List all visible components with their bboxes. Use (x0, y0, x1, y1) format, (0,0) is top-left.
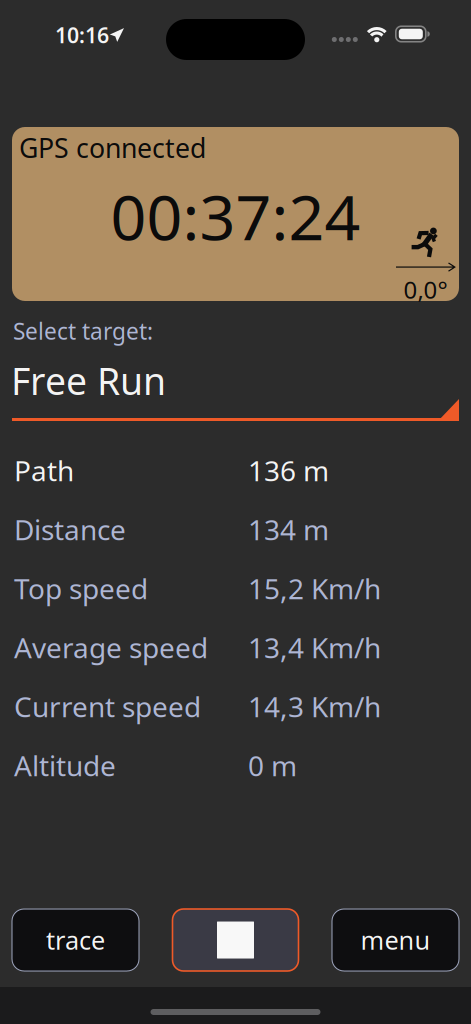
staticText: 136 m (248, 452, 329, 489)
staticText: menu (360, 923, 430, 957)
staticText: Altitude (14, 747, 116, 784)
button[interactable]: Stop (172, 909, 298, 971)
staticText: 00:37:24 (110, 174, 360, 258)
staticText: 0,0° (403, 274, 447, 305)
staticText: 134 m (248, 511, 329, 548)
button[interactable]: Select target: (0, 311, 471, 421)
button[interactable]: trace (12, 909, 139, 971)
staticText: 13,4 Km/h (248, 629, 381, 666)
staticText: Average speed (14, 629, 208, 666)
staticText: 0 m (248, 747, 297, 784)
staticText: Select target: (13, 316, 153, 346)
staticText: GPS connected (19, 130, 206, 165)
staticText: Current speed (14, 688, 201, 725)
staticText: Free Run (11, 356, 166, 405)
staticText: 15,2 Km/h (248, 570, 381, 607)
staticText: Distance (14, 511, 126, 548)
button[interactable]: menu (332, 909, 459, 971)
staticText: 10:16 (55, 21, 109, 49)
staticText: Path (14, 452, 74, 489)
staticText: 14,3 Km/h (248, 688, 381, 725)
staticText: Top speed (14, 570, 148, 607)
staticText: trace (46, 923, 105, 957)
